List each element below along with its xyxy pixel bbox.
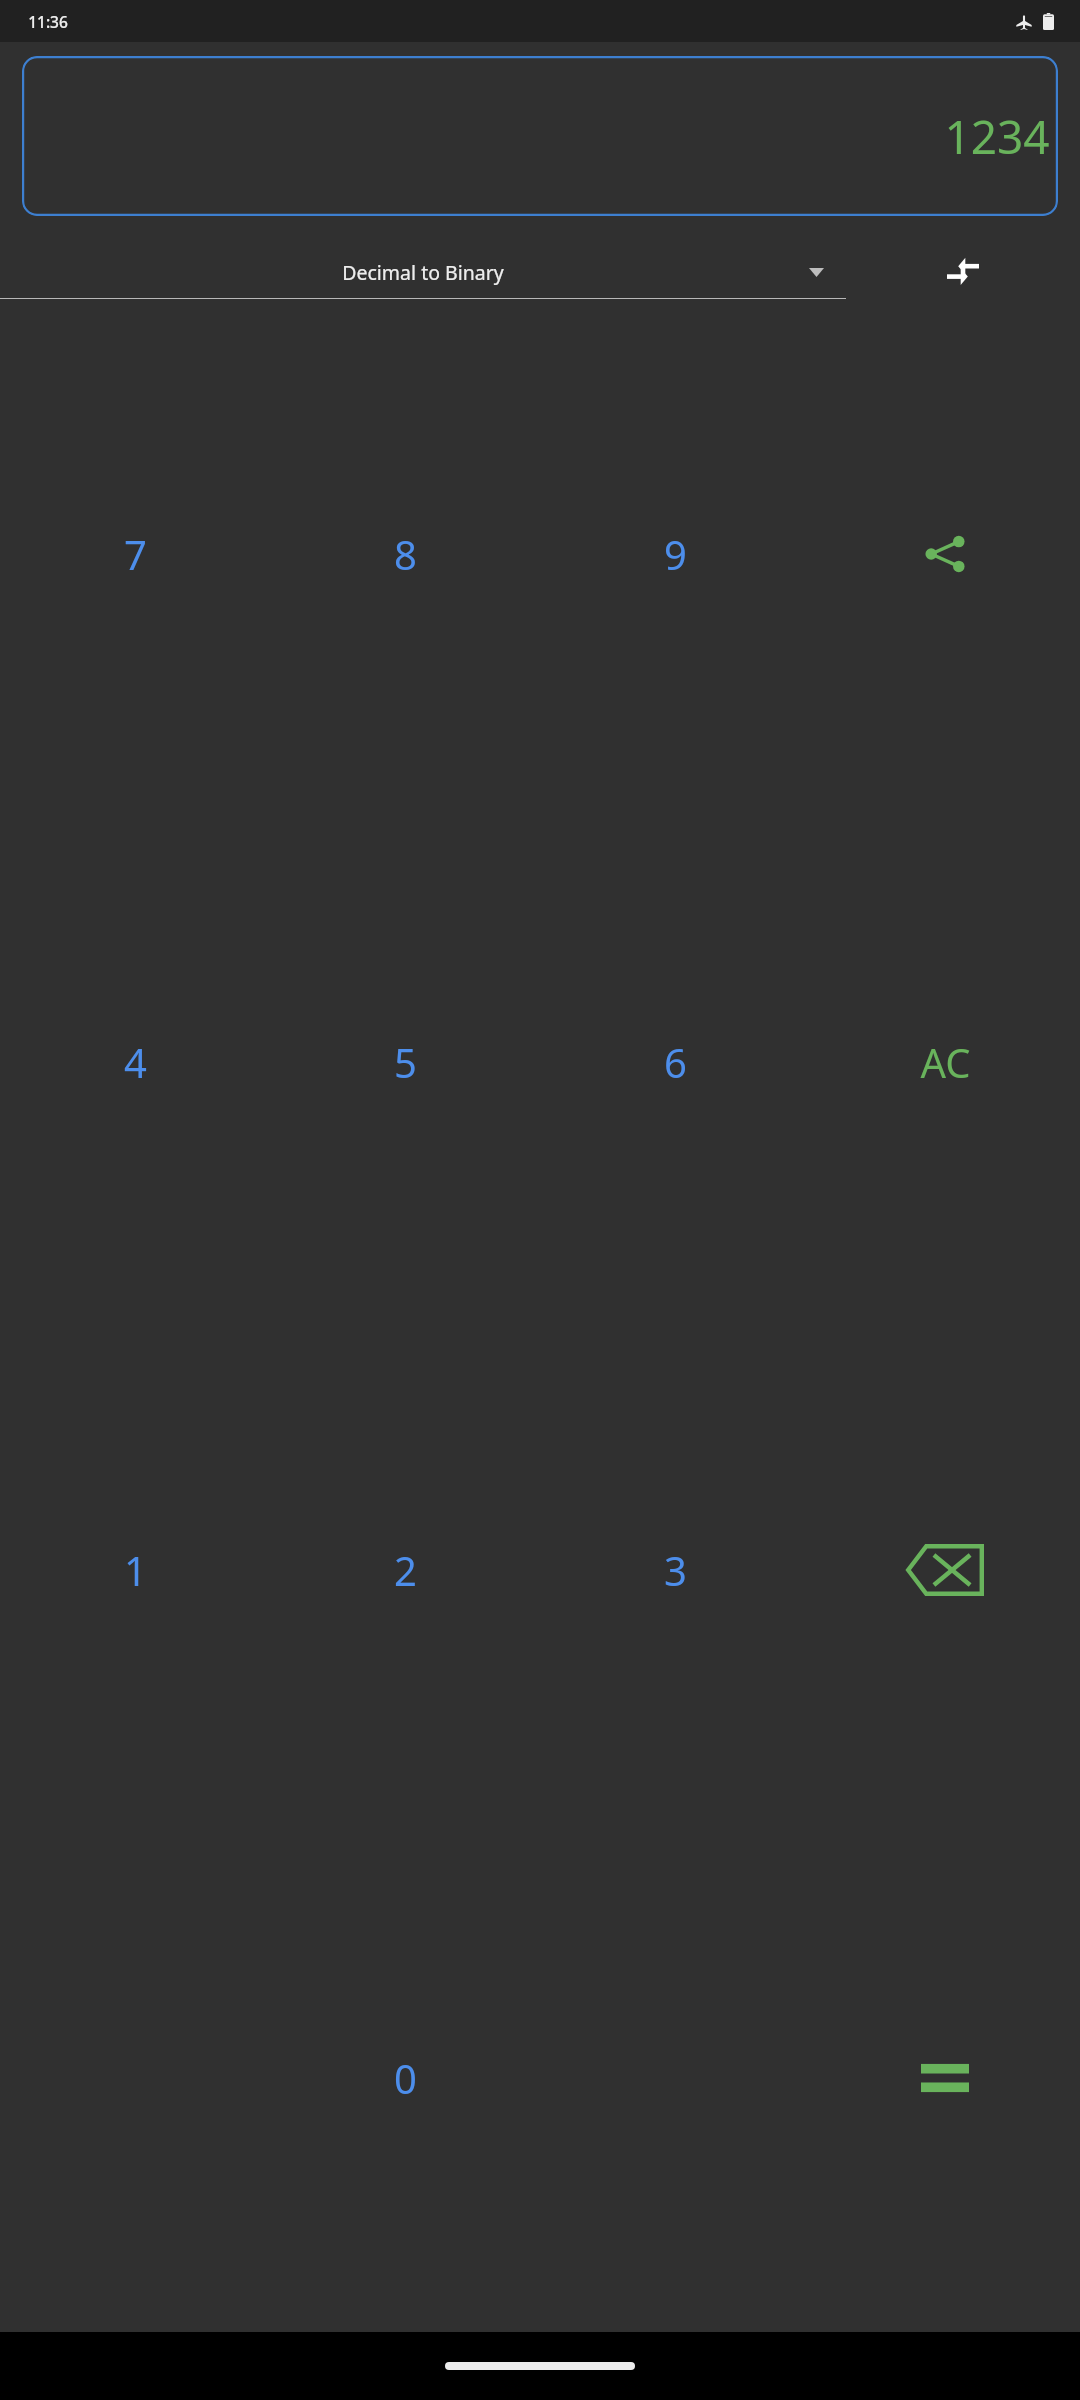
button[interactable]: Share [810, 300, 1080, 808]
staticText: 5 [394, 1035, 417, 1089]
button[interactable]: 1 [0, 1316, 270, 1824]
staticText: 1234 [944, 105, 1050, 168]
button[interactable]: 9 [540, 300, 810, 808]
button[interactable]: 6 [540, 808, 810, 1316]
button[interactable]: 8 [270, 300, 540, 808]
staticText: 6 [664, 1035, 687, 1089]
staticText: 1 [124, 1543, 147, 1597]
staticText: AC [920, 1035, 971, 1089]
button[interactable]: 1234 [22, 56, 1058, 216]
button[interactable]: 5 [270, 808, 540, 1316]
staticText: 9 [664, 527, 687, 581]
staticText: 8 [394, 527, 417, 581]
button[interactable]: 4 [0, 808, 270, 1316]
staticText: Decimal to Binary [342, 259, 504, 286]
button[interactable]: AC [810, 808, 1080, 1316]
button[interactable]: 7 [0, 300, 270, 808]
button[interactable]: Decimal to Binary [0, 246, 846, 299]
staticText: 2 [394, 1543, 417, 1597]
staticText: 0 [394, 2051, 417, 2105]
staticText: 11:36 [28, 11, 68, 32]
button[interactable]: Equals [810, 1824, 1080, 2332]
button[interactable]: 3 [540, 1316, 810, 1824]
button[interactable]: Backspace [810, 1316, 1080, 1824]
button[interactable]: 0 [270, 1824, 540, 2332]
staticText: 3 [664, 1543, 687, 1597]
button[interactable]: 2 [270, 1316, 540, 1824]
staticText: 7 [124, 527, 147, 581]
button[interactable]: Swap conversion direction [846, 244, 1080, 300]
staticText: 4 [124, 1035, 147, 1089]
